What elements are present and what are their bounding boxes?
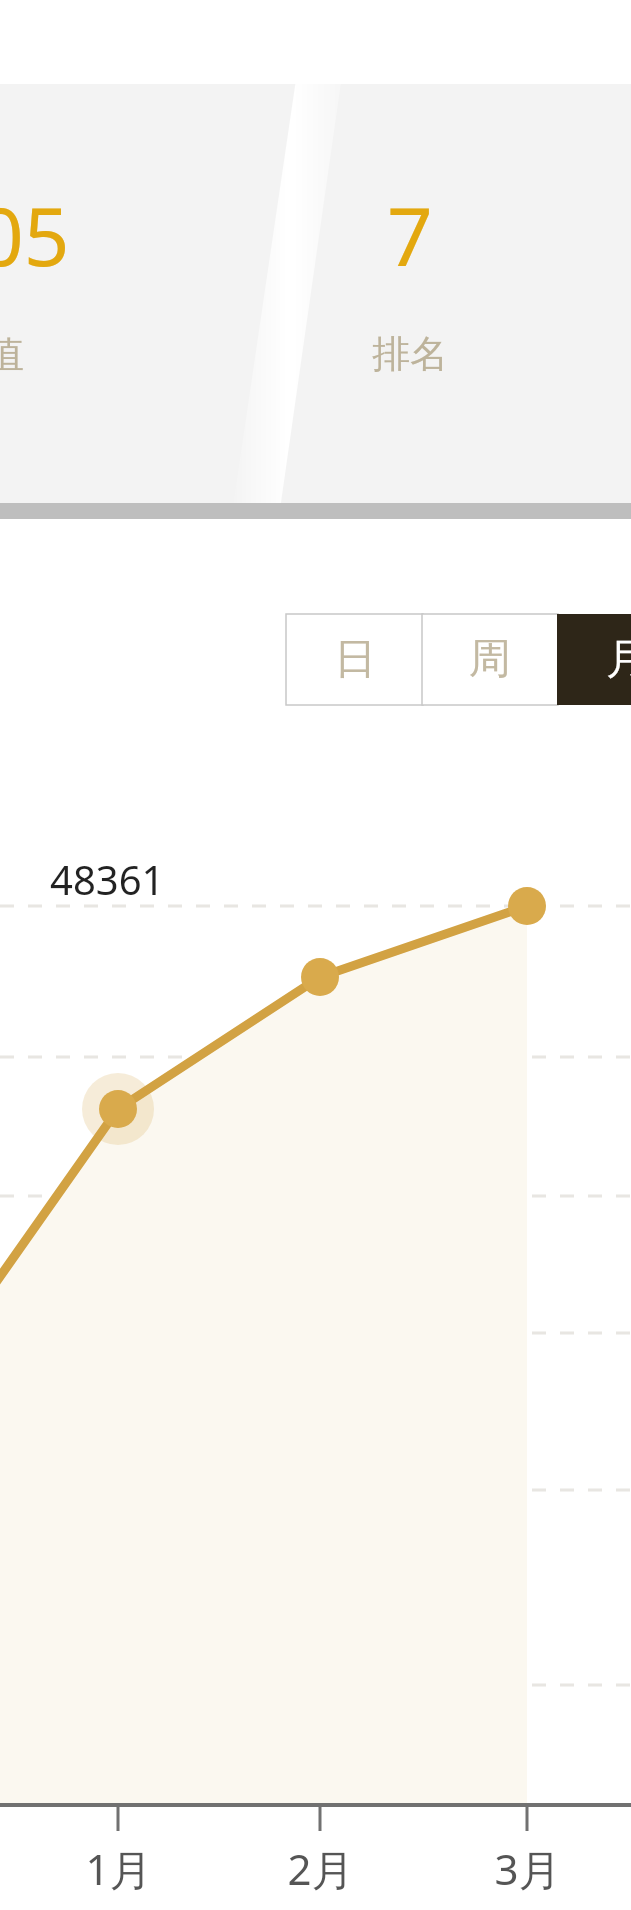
- button[interactable]: 日: [286, 614, 423, 705]
- staticText: 排名: [372, 330, 448, 378]
- other: Trend chart: [0, 0, 631, 1910]
- staticText: 48361: [50, 852, 165, 906]
- staticText: 值: [0, 330, 24, 378]
- staticText: 月: [606, 633, 631, 686]
- staticText: 1月: [85, 1840, 152, 1897]
- button[interactable]: 周: [422, 614, 558, 705]
- staticText: 3月: [494, 1840, 561, 1897]
- staticText: 2月: [287, 1840, 354, 1897]
- staticText: 周: [469, 633, 511, 686]
- staticText: 日: [334, 633, 376, 686]
- staticText: 05: [0, 180, 70, 289]
- button[interactable]: 月: [557, 614, 631, 705]
- staticText: 7: [387, 180, 433, 289]
